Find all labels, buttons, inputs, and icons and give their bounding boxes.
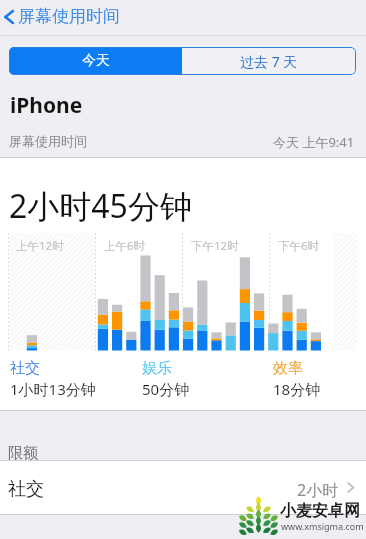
staticText: 过去 7 天: [240, 52, 298, 71]
staticText: 今天 上午9:41: [273, 133, 355, 151]
staticText: 效率: [273, 359, 303, 378]
staticText: 上午6时: [104, 238, 146, 254]
button[interactable]: 社交: [0, 461, 366, 514]
button[interactable]: 今天: [9, 47, 182, 75]
staticText: 2小时45分钟: [9, 184, 192, 228]
staticText: 社交: [8, 478, 44, 501]
staticText: 限额: [8, 444, 38, 463]
staticText: iPhone: [10, 91, 83, 120]
button[interactable]: 社交: [10, 359, 128, 399]
button[interactable]: Back: [0, 0, 366, 33]
staticText: 娱乐: [142, 359, 172, 378]
button[interactable]: 效率: [273, 359, 366, 399]
staticText: 屏幕使用时间: [9, 133, 87, 149]
staticText: 1小时13分钟: [10, 379, 96, 399]
staticText: 50分钟: [142, 379, 190, 399]
staticText: 社交: [10, 359, 40, 378]
staticText: 今天: [82, 52, 110, 70]
staticText: 屏幕使用时间: [18, 6, 120, 27]
staticText: 小麦安卓网: [280, 501, 360, 521]
button[interactable]: 过去 7 天: [182, 47, 356, 75]
staticText: 18分钟: [273, 379, 321, 399]
button[interactable]: 娱乐: [142, 359, 260, 399]
staticText: 下午6时: [278, 238, 320, 254]
staticText: www.xmsigma.com: [281, 520, 364, 532]
staticText: 下午12时: [191, 238, 239, 254]
staticText: 上午12时: [16, 238, 64, 254]
staticText: 2小时: [297, 479, 339, 501]
